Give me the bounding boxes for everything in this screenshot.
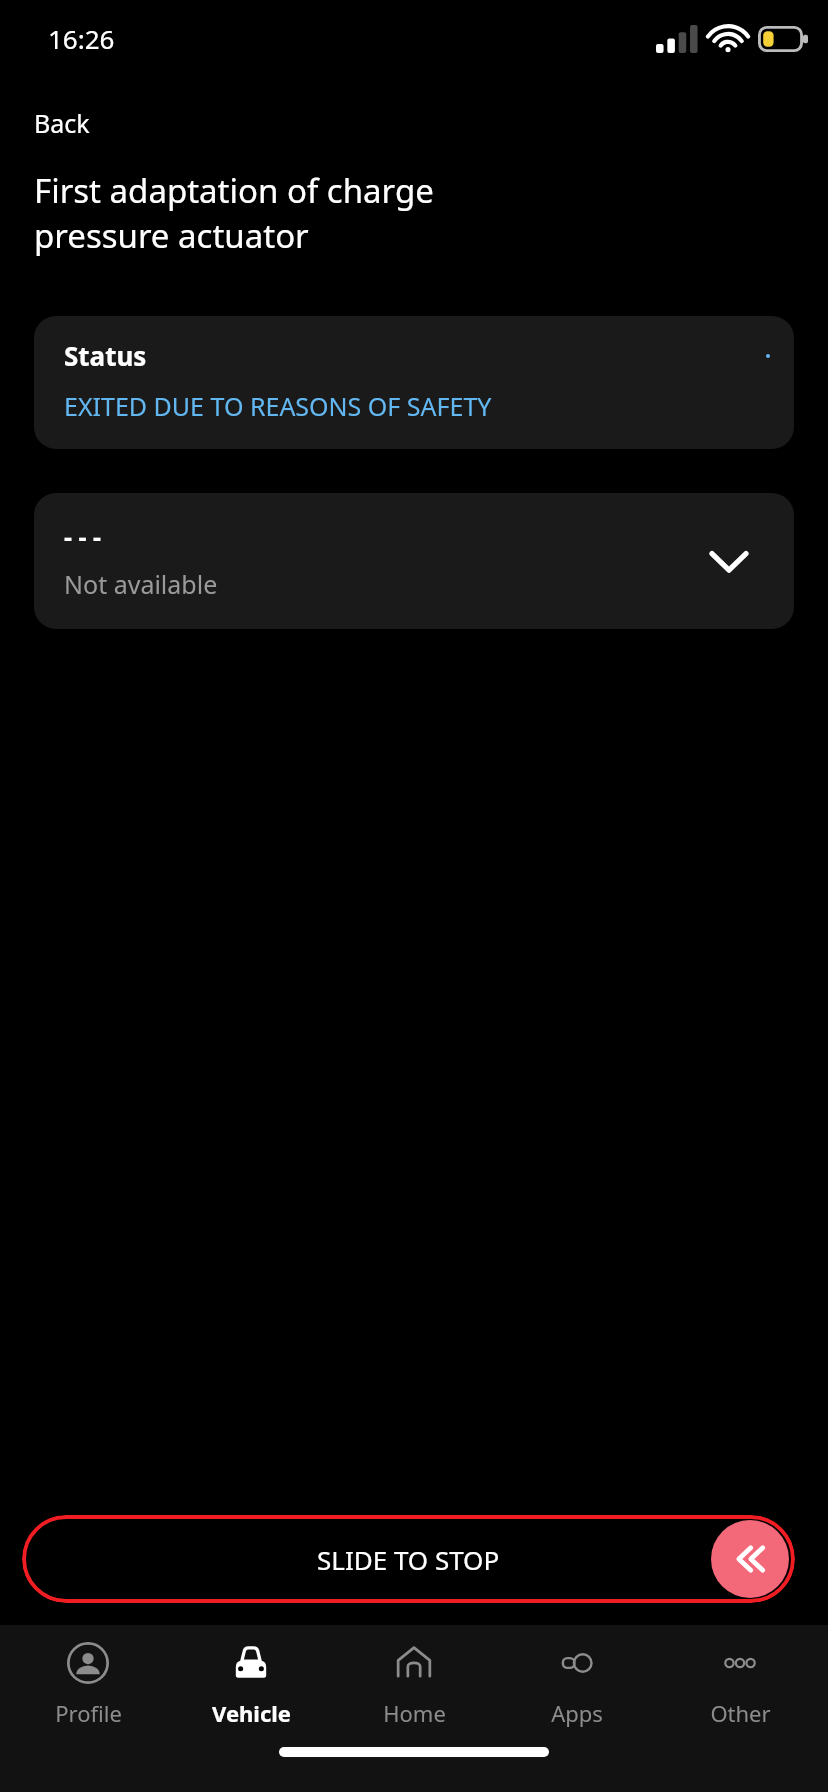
other: Slide handle [711, 1520, 789, 1598]
other: Expand [706, 538, 752, 584]
staticText: Vehicle [212, 1698, 291, 1728]
button[interactable]: Profile [13, 1632, 163, 1736]
staticText: 16:26 [48, 21, 115, 56]
button[interactable]: Apps [502, 1632, 652, 1736]
staticText: Back [34, 106, 90, 140]
button[interactable]: - - - [34, 493, 794, 629]
button[interactable]: Other [665, 1632, 815, 1736]
staticText: SLIDE TO STOP [317, 1542, 500, 1577]
staticText: First adaptation of charge pressure actu… [34, 168, 434, 258]
staticText: Home [383, 1698, 446, 1728]
button[interactable]: Vehicle [176, 1632, 326, 1736]
button[interactable]: Status [34, 316, 794, 449]
staticText: Other [710, 1698, 771, 1728]
staticText: - - - [64, 519, 102, 553]
button[interactable]: Home [339, 1632, 489, 1736]
staticText: Profile [55, 1698, 122, 1728]
staticText: Not available [64, 567, 218, 601]
staticText: Status [64, 338, 147, 373]
button[interactable]: SLIDE TO STOP [22, 1515, 795, 1603]
button[interactable]: Back [22, 100, 102, 146]
staticText: Apps [551, 1698, 603, 1728]
staticText: EXITED DUE TO REASONS OF SAFETY [64, 389, 492, 423]
